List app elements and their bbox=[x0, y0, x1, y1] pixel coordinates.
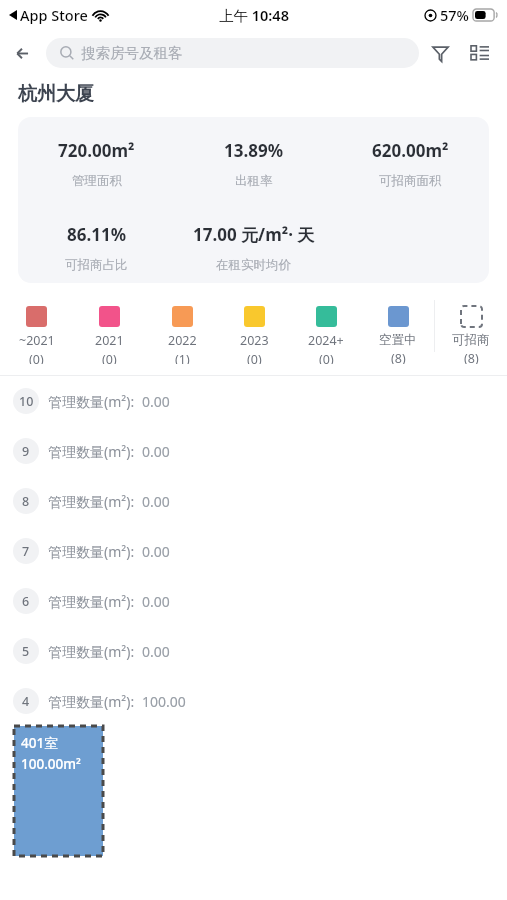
button[interactable]: 2022 bbox=[146, 296, 218, 364]
button[interactable]: 5 bbox=[0, 626, 507, 676]
button[interactable]: List view bbox=[461, 30, 499, 76]
button[interactable]: 2021 bbox=[73, 296, 146, 364]
staticText: 可招商 bbox=[452, 332, 490, 348]
staticText: (0) bbox=[29, 351, 44, 364]
staticText: 0.00 bbox=[142, 642, 170, 661]
staticText: 上午 10:48 bbox=[219, 5, 289, 25]
staticText: 管理数量(m²): bbox=[48, 492, 135, 511]
staticText: 100.00 bbox=[142, 692, 186, 711]
staticText: 0.00 bbox=[142, 592, 170, 611]
button[interactable]: 720.00m² bbox=[18, 117, 489, 283]
button[interactable]: ~2021 bbox=[0, 296, 73, 364]
staticText: 0.00 bbox=[142, 492, 170, 511]
button[interactable]: Back bbox=[0, 30, 46, 76]
staticText: 管理面积 bbox=[72, 173, 122, 189]
staticText: 9 bbox=[22, 443, 30, 460]
staticText: 620.00m² bbox=[372, 139, 449, 162]
staticText: 管理数量(m²): bbox=[48, 392, 135, 411]
staticText: 杭州大厦 bbox=[18, 82, 94, 106]
staticText: 可招商占比 bbox=[65, 257, 128, 273]
staticText: 管理数量(m²): bbox=[48, 692, 135, 711]
staticText: 4 bbox=[22, 693, 30, 710]
staticText: 2024+ bbox=[308, 332, 344, 349]
staticText: 720.00m² bbox=[58, 139, 135, 162]
staticText: 管理数量(m²): bbox=[48, 542, 135, 561]
staticText: 6 bbox=[22, 593, 30, 610]
staticText: 出租率 bbox=[235, 173, 273, 189]
button[interactable]: 4 bbox=[0, 676, 507, 726]
staticText: (8) bbox=[391, 350, 406, 364]
staticText: 管理数量(m²): bbox=[48, 442, 135, 461]
staticText: 管理数量(m²): bbox=[48, 592, 135, 611]
staticText: 2021 bbox=[95, 332, 124, 349]
staticText: 0.00 bbox=[142, 392, 170, 411]
staticText: 0.00 bbox=[142, 442, 170, 461]
button[interactable]: 10 bbox=[0, 376, 507, 426]
staticText: 57% bbox=[440, 5, 469, 25]
button[interactable]: 2024+ bbox=[290, 296, 362, 364]
staticText: 0.00 bbox=[142, 542, 170, 561]
staticText: 管理数量(m²): bbox=[48, 642, 135, 661]
button[interactable]: 9 bbox=[0, 426, 507, 476]
staticText: 17.00 元/m²· 天 bbox=[193, 223, 315, 246]
staticText: (0) bbox=[319, 351, 334, 364]
staticText: 可招商面积 bbox=[379, 173, 442, 189]
button[interactable]: Filter bbox=[419, 32, 461, 74]
staticText: 13.89% bbox=[224, 139, 284, 162]
staticText: 2022 bbox=[168, 332, 197, 349]
staticText: 10 bbox=[19, 393, 34, 410]
staticText: 空置中 bbox=[379, 332, 417, 348]
button[interactable]: 8 bbox=[0, 476, 507, 526]
staticText: 5 bbox=[22, 643, 30, 660]
staticText: App Store bbox=[20, 5, 88, 25]
button[interactable]: 7 bbox=[0, 526, 507, 576]
staticText: 401室 bbox=[21, 734, 58, 752]
button[interactable]: 搜索房号及租客 bbox=[46, 38, 419, 68]
staticText: (0) bbox=[247, 351, 262, 364]
button[interactable]: 2023 bbox=[218, 296, 290, 364]
staticText: 86.11% bbox=[67, 223, 127, 246]
staticText: 100.00m² bbox=[21, 755, 81, 773]
staticText: 在租实时均价 bbox=[216, 257, 291, 273]
staticText: (8) bbox=[464, 350, 479, 364]
staticText: (0) bbox=[102, 351, 117, 364]
staticText: 搜索房号及租客 bbox=[81, 44, 183, 62]
button[interactable]: 空置中 bbox=[362, 296, 434, 364]
button[interactable]: 6 bbox=[0, 576, 507, 626]
staticText: (1) bbox=[175, 351, 190, 364]
staticText: 2023 bbox=[240, 332, 269, 349]
staticText: 7 bbox=[22, 543, 30, 560]
staticText: 8 bbox=[22, 493, 30, 510]
button[interactable]: 可招商 bbox=[435, 296, 507, 364]
staticText: ~2021 bbox=[19, 332, 55, 349]
